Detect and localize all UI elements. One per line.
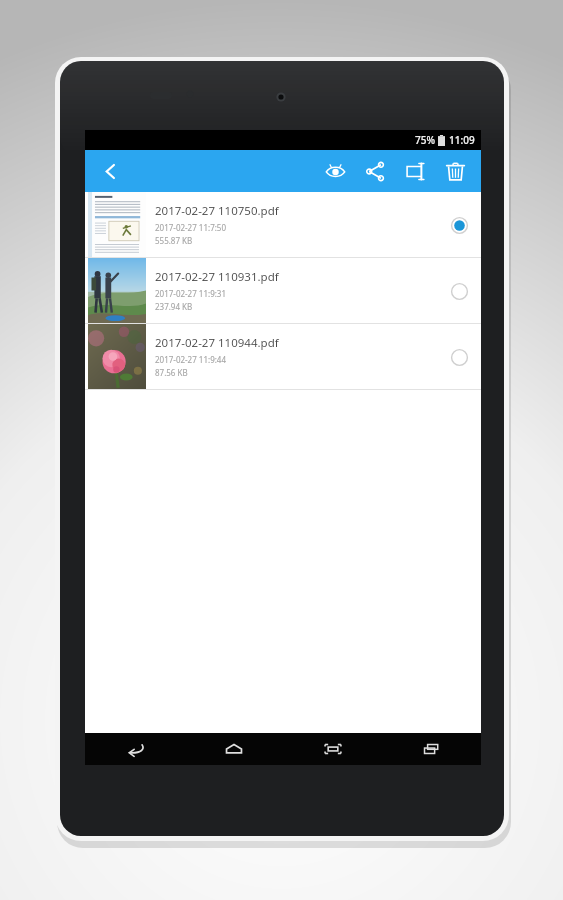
staticText: 2017-02-27 110944.pdf — [155, 335, 279, 351]
button[interactable]: Screenshot — [283, 733, 382, 765]
button[interactable]: Select — [437, 335, 481, 379]
staticText: 237.94 KB — [155, 301, 193, 312]
staticText: 2017-02-27 110750.pdf — [155, 203, 279, 219]
staticText: 555.87 KB — [155, 235, 193, 246]
button[interactable]: 2017-02-27 110750.pdf — [85, 192, 481, 258]
button[interactable]: 2017-02-27 110931.pdf — [85, 258, 481, 324]
staticText: 2017-02-27 110931.pdf — [155, 269, 279, 285]
button[interactable]: Delete — [435, 150, 475, 192]
staticText: 75% — [415, 133, 435, 147]
button[interactable]: Home — [184, 733, 283, 765]
button[interactable]: Preview — [315, 150, 355, 192]
button[interactable]: Recents — [382, 733, 481, 765]
button[interactable]: Selected — [437, 203, 481, 247]
staticText: 2017-02-27 11:7:50 — [155, 222, 227, 233]
button[interactable]: Select — [437, 269, 481, 313]
button[interactable]: Share — [355, 150, 395, 192]
button[interactable]: Back — [85, 733, 184, 765]
staticText: 2017-02-27 11:9:31 — [155, 288, 227, 299]
staticText: 87.56 KB — [155, 367, 188, 378]
button[interactable]: 2017-02-27 110944.pdf — [85, 324, 481, 390]
staticText: 2017-02-27 11:9:44 — [155, 354, 227, 365]
button[interactable]: Back — [89, 150, 131, 192]
button[interactable]: Rename — [395, 150, 435, 192]
staticText: 11:09 — [449, 133, 475, 147]
